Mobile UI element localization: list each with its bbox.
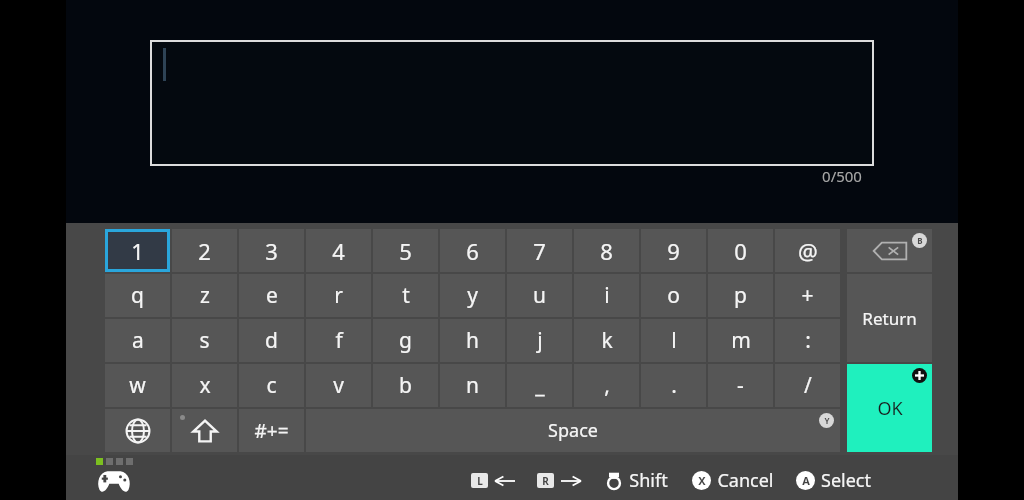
staticText: B [917, 235, 923, 246]
button[interactable]: Space [306, 409, 840, 452]
button[interactable]: p [708, 274, 773, 317]
button[interactable]: : [775, 319, 840, 362]
staticText: i [604, 281, 610, 310]
button[interactable]: #+= [239, 409, 304, 452]
button[interactable]: o [641, 274, 706, 317]
staticText: OK [877, 396, 903, 421]
staticText: w [129, 371, 146, 400]
staticText: d [265, 326, 278, 355]
button[interactable]: _ [507, 364, 572, 407]
button[interactable]: u [507, 274, 572, 317]
staticText: o [667, 281, 680, 310]
staticText: @ [798, 236, 818, 266]
staticText: Shift [629, 468, 668, 493]
button[interactable]: v [306, 364, 371, 407]
button[interactable]: z [172, 274, 237, 317]
button[interactable]: b [373, 364, 438, 407]
button[interactable]: 1 [105, 229, 170, 272]
button[interactable]: t [373, 274, 438, 317]
staticText: Y [824, 415, 830, 426]
button[interactable]: 2 [172, 229, 237, 272]
staticText: f [335, 326, 343, 355]
button[interactable]: Shift [605, 468, 668, 493]
staticText: 6 [466, 236, 479, 266]
staticText: n [466, 371, 479, 400]
staticText: , [604, 371, 610, 400]
button[interactable]: / [775, 364, 840, 407]
button[interactable]: r [306, 274, 371, 317]
staticText: 7 [533, 236, 546, 266]
button[interactable]: 4 [306, 229, 371, 272]
staticText: Cancel [717, 468, 774, 493]
staticText: x [199, 371, 211, 400]
button[interactable]: 3 [239, 229, 304, 272]
staticText: b [399, 371, 412, 400]
staticText: e [266, 281, 278, 310]
button[interactable]: 6 [440, 229, 505, 272]
staticText: c [266, 371, 277, 400]
staticText: A [802, 473, 810, 488]
staticText: 4 [332, 236, 345, 266]
button[interactable]: i [574, 274, 639, 317]
button[interactable]: e [239, 274, 304, 317]
button[interactable]: 7 [507, 229, 572, 272]
button[interactable]: d [239, 319, 304, 362]
staticText: 0/500 [822, 166, 862, 186]
button[interactable]: m [708, 319, 773, 362]
button[interactable]: g [373, 319, 438, 362]
button[interactable]: Return [847, 274, 932, 362]
button[interactable]: - [708, 364, 773, 407]
button[interactable]: q [105, 274, 170, 317]
staticText: j [537, 326, 543, 355]
button[interactable]: 5 [373, 229, 438, 272]
staticText: 1 [131, 236, 144, 266]
button[interactable]: Change language [105, 409, 170, 452]
button[interactable]: X [692, 468, 774, 493]
staticText: 3 [265, 236, 278, 266]
button[interactable]: j [507, 319, 572, 362]
button[interactable]: x [172, 364, 237, 407]
staticText: 0 [734, 236, 747, 266]
button[interactable]: f [306, 319, 371, 362]
button[interactable]: + [775, 274, 840, 317]
staticText: y [467, 281, 478, 310]
button[interactable]: OK [847, 364, 932, 452]
button[interactable]: k [574, 319, 639, 362]
button[interactable]: , [574, 364, 639, 407]
staticText: : [805, 326, 811, 355]
staticText: - [737, 371, 744, 400]
button[interactable]: A [796, 468, 871, 493]
staticText: + [801, 281, 814, 310]
button[interactable]: 8 [574, 229, 639, 272]
button[interactable]: 0 [708, 229, 773, 272]
staticText: z [200, 281, 210, 310]
button[interactable]: c [239, 364, 304, 407]
button[interactable]: Shift [172, 409, 237, 452]
button[interactable]: . [641, 364, 706, 407]
staticText: Select [821, 468, 871, 493]
button[interactable]: @ [775, 229, 840, 272]
staticText: Return [862, 307, 917, 330]
staticText: g [399, 326, 412, 355]
staticText: a [132, 326, 144, 355]
button[interactable]: h [440, 319, 505, 362]
staticText: Space [548, 418, 598, 443]
button[interactable]: a [105, 319, 170, 362]
button[interactable]: s [172, 319, 237, 362]
staticText: X [698, 473, 706, 488]
button[interactable]: 9 [641, 229, 706, 272]
staticText: / [804, 371, 812, 400]
staticText: . [671, 371, 677, 400]
button[interactable]: y [440, 274, 505, 317]
staticText: L [477, 474, 483, 488]
staticText: 2 [198, 236, 211, 266]
staticText: #+= [254, 418, 289, 444]
staticText: _ [535, 371, 545, 400]
staticText: h [466, 326, 479, 355]
staticText: r [334, 281, 343, 310]
button[interactable]: n [440, 364, 505, 407]
button[interactable]: l [641, 319, 706, 362]
button[interactable]: w [105, 364, 170, 407]
button[interactable]: Backspace [847, 229, 932, 272]
staticText: q [131, 281, 144, 310]
